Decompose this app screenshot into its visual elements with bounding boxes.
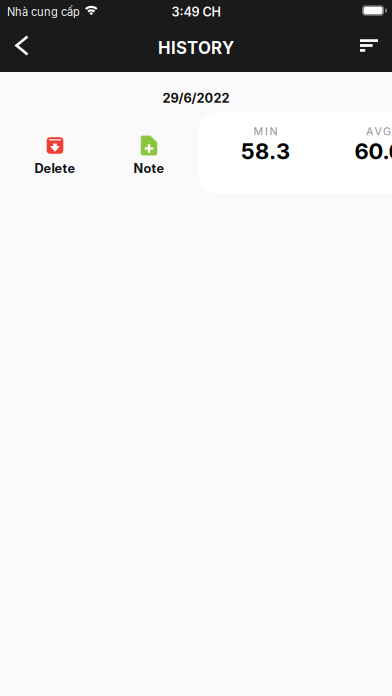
staticText: Delete — [34, 161, 75, 176]
staticText: 3:49 CH — [171, 4, 220, 20]
button[interactable]: Note — [102, 135, 196, 176]
staticText: AVG — [366, 125, 391, 138]
button[interactable]: Back — [0, 26, 44, 70]
staticText: Nhà cung cấp — [7, 5, 80, 19]
staticText: HISTORY — [158, 38, 234, 58]
button[interactable]: Delete — [8, 135, 102, 176]
staticText: Note — [133, 161, 164, 176]
staticText: 29/6/2022 — [162, 90, 229, 106]
button[interactable]: Filter — [347, 26, 391, 70]
staticText: MIN — [253, 125, 278, 138]
staticText: 60.6 — [354, 138, 392, 164]
staticText: 58.3 — [241, 138, 290, 164]
